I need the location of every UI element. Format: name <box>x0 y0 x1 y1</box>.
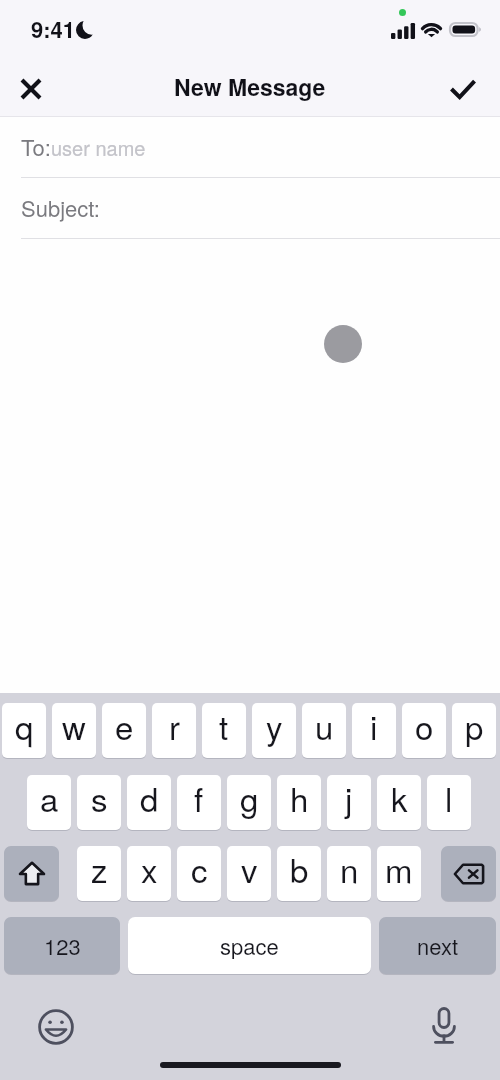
staticText: k <box>391 775 408 821</box>
button[interactable]: next <box>379 917 496 974</box>
button[interactable]: e <box>102 703 146 758</box>
staticText: d <box>140 775 159 821</box>
button[interactable]: k <box>377 775 421 830</box>
staticText: p <box>465 703 484 749</box>
button[interactable]: To: <box>0 117 500 177</box>
button[interactable]: h <box>277 775 321 830</box>
staticText: f <box>194 775 204 821</box>
button[interactable]: o <box>402 703 446 758</box>
staticText: i <box>370 703 378 749</box>
button[interactable]: w <box>52 703 96 758</box>
button[interactable]: a <box>27 775 71 830</box>
button[interactable]: g <box>227 775 271 830</box>
staticText: w <box>62 703 86 749</box>
button[interactable]: b <box>277 846 321 901</box>
staticText: New Message <box>174 70 326 103</box>
button[interactable]: j <box>327 775 371 830</box>
button[interactable]: q <box>2 703 46 758</box>
staticText: Subject: <box>21 192 100 224</box>
staticText: e <box>115 703 134 749</box>
button[interactable]: l <box>427 775 471 830</box>
button[interactable]: space <box>128 917 371 974</box>
button[interactable]: Subject: <box>0 178 500 238</box>
staticText: s <box>91 775 108 821</box>
staticText: b <box>290 846 309 892</box>
staticText: c <box>191 846 208 892</box>
button[interactable]: z <box>77 846 121 901</box>
button[interactable]: m <box>377 846 421 901</box>
button[interactable]: f <box>177 775 221 830</box>
staticText: 123 <box>44 930 81 962</box>
staticText: r <box>169 703 180 749</box>
button[interactable]: v <box>227 846 271 901</box>
staticText: a <box>40 775 59 821</box>
staticText: l <box>445 775 453 821</box>
staticText: n <box>340 846 359 892</box>
button[interactable]: Backspace <box>441 846 496 901</box>
button[interactable]: Dictation <box>424 1006 464 1046</box>
button[interactable]: r <box>152 703 196 758</box>
staticText: z <box>91 846 108 892</box>
button[interactable]: x <box>127 846 171 901</box>
staticText: 9:41 <box>31 13 76 45</box>
button[interactable]: 123 <box>4 917 120 974</box>
button[interactable]: y <box>252 703 296 758</box>
staticText: y <box>266 703 283 749</box>
button[interactable]: i <box>352 703 396 758</box>
button[interactable]: Emoji <box>36 1007 76 1047</box>
staticText: q <box>15 703 34 749</box>
staticText: x <box>141 846 158 892</box>
button[interactable]: c <box>177 846 221 901</box>
staticText: space <box>220 930 279 962</box>
button[interactable]: Shift <box>4 846 59 901</box>
staticText: h <box>290 775 309 821</box>
button[interactable]: Send <box>441 67 484 110</box>
staticText: o <box>415 703 434 749</box>
staticText: g <box>240 775 259 821</box>
staticText: u <box>315 703 334 749</box>
staticText: j <box>345 775 353 821</box>
staticText: m <box>385 846 413 892</box>
staticText: t <box>219 703 229 749</box>
button[interactable]: t <box>202 703 246 758</box>
button[interactable]: Close <box>9 67 52 110</box>
staticText: To: <box>21 131 51 163</box>
button[interactable]: p <box>452 703 496 758</box>
button[interactable]: n <box>327 846 371 901</box>
button[interactable]: d <box>127 775 171 830</box>
button[interactable]: u <box>302 703 346 758</box>
staticText: v <box>241 846 258 892</box>
button[interactable]: s <box>77 775 121 830</box>
staticText: user name <box>51 133 146 162</box>
staticText: next <box>417 930 459 962</box>
